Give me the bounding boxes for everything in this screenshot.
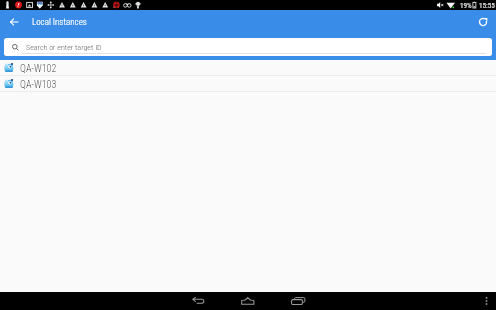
button[interactable]: Search or enter target ID [4, 38, 492, 56]
button[interactable]: Navigate up [0, 10, 28, 34]
staticText: Local Instances [32, 17, 87, 28]
button[interactable]: Back [178, 292, 218, 310]
staticText: QA-W103 [20, 79, 57, 91]
staticText: 19% [460, 1, 472, 9]
staticText: 15:55 [479, 1, 495, 9]
button[interactable]: Recent apps [278, 292, 318, 310]
button[interactable]: Home [228, 292, 268, 310]
staticText: Search or enter target ID [26, 43, 102, 52]
button[interactable]: Refresh [470, 10, 496, 34]
button[interactable]: More options [478, 293, 494, 309]
button[interactable]: QA-W103 [0, 76, 496, 92]
staticText: QA-W102 [20, 63, 57, 75]
button[interactable]: QA-W102 [0, 60, 496, 76]
